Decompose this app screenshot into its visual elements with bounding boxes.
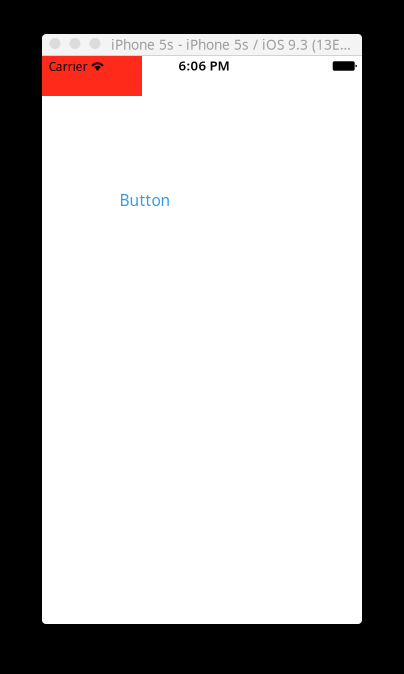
staticText: 6:06 PM	[178, 56, 229, 74]
staticText: Button	[119, 189, 170, 211]
button[interactable]: Button	[113, 187, 177, 213]
staticText: Carrier	[49, 58, 88, 74]
staticText: iPhone 5s - iPhone 5s / iOS 9.3 (13E…	[111, 35, 351, 54]
button[interactable]: Close window	[49, 38, 60, 49]
button[interactable]: Minimise window	[69, 38, 80, 49]
button[interactable]: Zoom window	[89, 38, 100, 49]
